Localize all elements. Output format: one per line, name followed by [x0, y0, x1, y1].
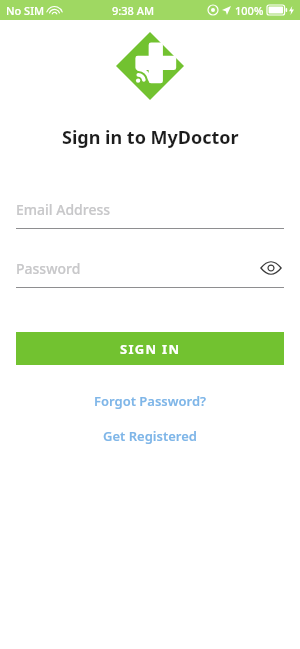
staticText: Email Address: [16, 200, 111, 219]
button[interactable]: Show password: [258, 255, 284, 281]
button[interactable]: Forgot Password?: [82, 389, 219, 413]
staticText: 9:38 AM: [112, 3, 155, 18]
staticText: Sign in to MyDoctor: [62, 125, 239, 150]
staticText: Password: [16, 259, 81, 278]
button[interactable]: SIGN IN: [16, 332, 284, 365]
button[interactable]: Get Registered: [91, 424, 209, 448]
staticText: No SIM: [6, 3, 45, 18]
staticText: Forgot Password?: [94, 392, 207, 410]
staticText: SIGN IN: [120, 340, 181, 358]
staticText: 100%: [235, 3, 264, 18]
staticText: Get Registered: [103, 427, 197, 445]
